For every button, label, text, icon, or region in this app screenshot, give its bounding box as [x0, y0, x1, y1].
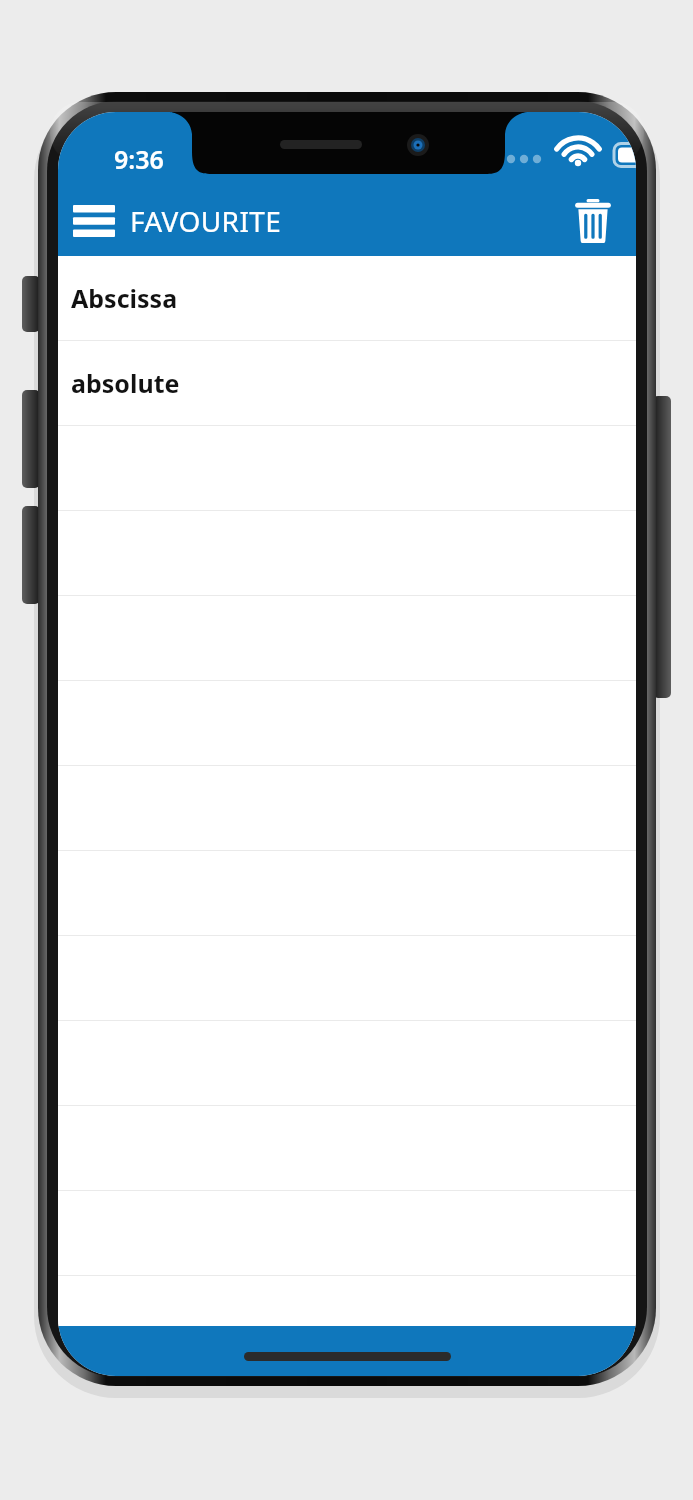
- button[interactable]: Delete all favourites: [560, 188, 626, 254]
- button[interactable]: Open navigation menu: [66, 193, 122, 249]
- staticText: absolute: [71, 366, 180, 400]
- staticText: Abscissa: [71, 281, 178, 315]
- staticText: 9:36: [114, 142, 164, 176]
- button[interactable]: Abscissa: [58, 256, 636, 340]
- staticText: FAVOURITE: [130, 202, 282, 240]
- button[interactable]: absolute: [58, 341, 636, 425]
